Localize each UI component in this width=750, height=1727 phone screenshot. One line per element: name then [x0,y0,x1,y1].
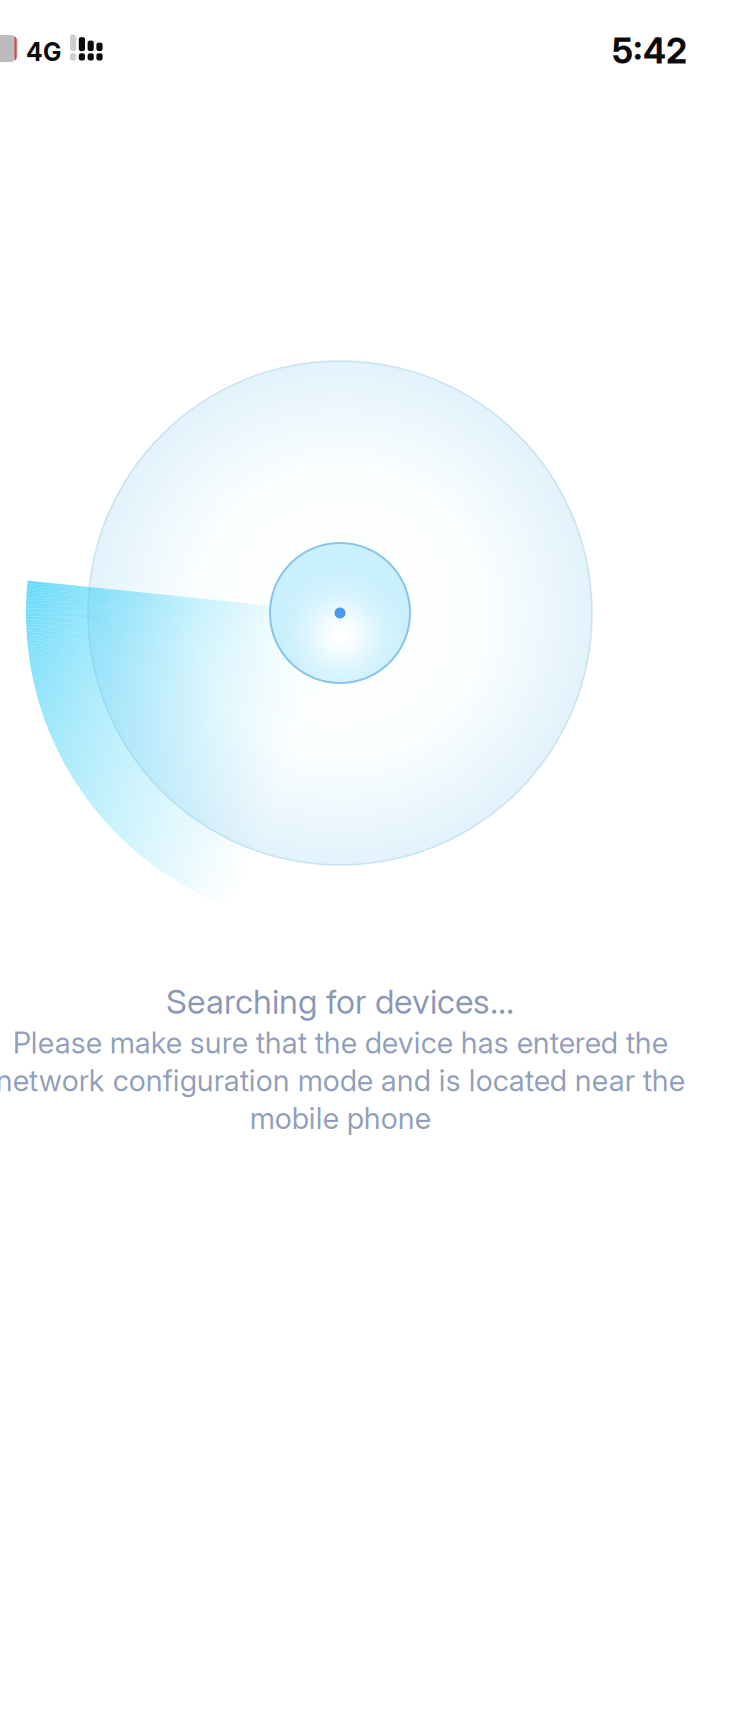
staticText: Searching for devices... [166,981,514,1022]
staticText: Please make sure that the device has ent… [0,1025,684,1136]
staticText: 4G [26,37,61,67]
staticText: 5:42 [612,30,687,72]
